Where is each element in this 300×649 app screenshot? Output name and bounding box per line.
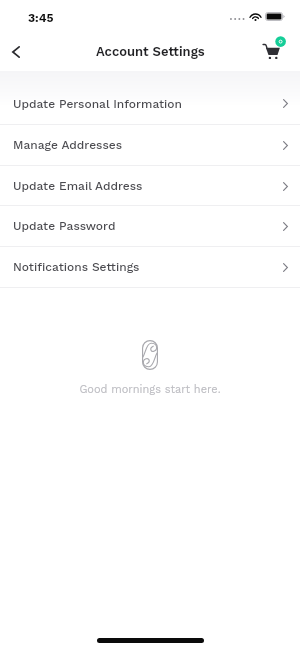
staticText: Manage Addresses [13, 138, 123, 152]
staticText: Account Settings [96, 44, 205, 59]
button[interactable]: Update Password [0, 206, 300, 246]
staticText: Update Personal Information [13, 97, 182, 111]
button[interactable]: Update Email Address [0, 166, 300, 206]
staticText: 3:45 [28, 11, 54, 25]
button[interactable]: Update Personal Information [0, 83, 300, 124]
button[interactable]: Shopping cart [260, 36, 287, 63]
staticText: Notifications Settings [13, 260, 140, 274]
button[interactable]: Manage Addresses [0, 125, 300, 165]
button[interactable]: Back [2, 38, 30, 66]
staticText: Update Password [13, 219, 116, 233]
staticText: Update Email Address [13, 179, 143, 193]
button[interactable]: Notifications Settings [0, 247, 300, 287]
staticText: Good mornings start here. [79, 383, 221, 396]
